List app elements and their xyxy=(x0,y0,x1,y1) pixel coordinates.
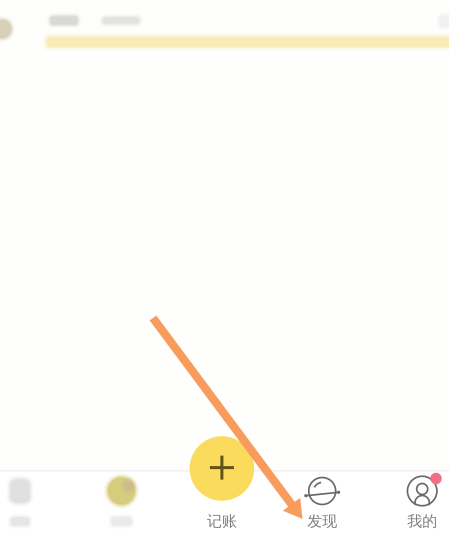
button[interactable]: 记账 xyxy=(190,436,254,501)
button[interactable]: 发现 xyxy=(272,470,372,536)
button[interactable]: 图表 xyxy=(71,470,171,536)
button[interactable]: 记账 xyxy=(172,470,272,536)
staticText: 发现 xyxy=(307,512,337,531)
button[interactable]: 我的 xyxy=(372,470,449,536)
button[interactable]: 明细 xyxy=(0,470,70,536)
staticText: 记账 xyxy=(207,512,237,531)
staticText: 我的 xyxy=(407,512,437,531)
